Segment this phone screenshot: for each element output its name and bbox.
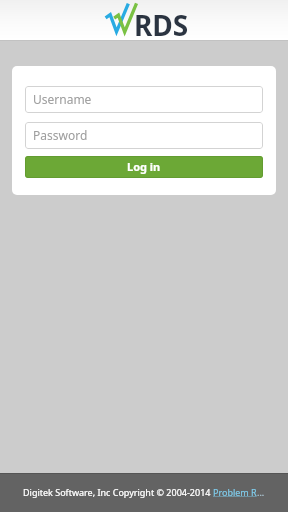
staticText: ... — [257, 486, 265, 498]
staticText: Digitek Software, Inc Copyright © 2004-2… — [23, 486, 213, 498]
staticText: Password — [33, 127, 88, 143]
button[interactable]: Problem R — [213, 486, 257, 498]
button[interactable]: Username — [25, 86, 263, 113]
button[interactable]: Password — [25, 122, 263, 149]
button[interactable]: Log in — [25, 156, 263, 178]
staticText: RDS — [134, 6, 189, 44]
staticText: Log in — [127, 159, 161, 174]
staticText: Username — [33, 91, 92, 107]
